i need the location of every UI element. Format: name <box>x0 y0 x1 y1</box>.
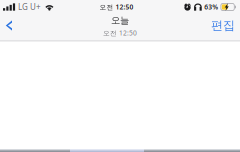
staticText: 편집 <box>211 18 235 33</box>
staticText: LG U+ <box>18 2 41 12</box>
staticText: 63% <box>204 3 218 11</box>
button[interactable]: Back <box>1 14 17 36</box>
staticText: 오전 12:50 <box>99 3 133 11</box>
staticText: 오전 12:50 <box>103 29 137 37</box>
button[interactable]: 편집 <box>208 14 238 36</box>
staticText: 오늘 <box>111 15 129 26</box>
